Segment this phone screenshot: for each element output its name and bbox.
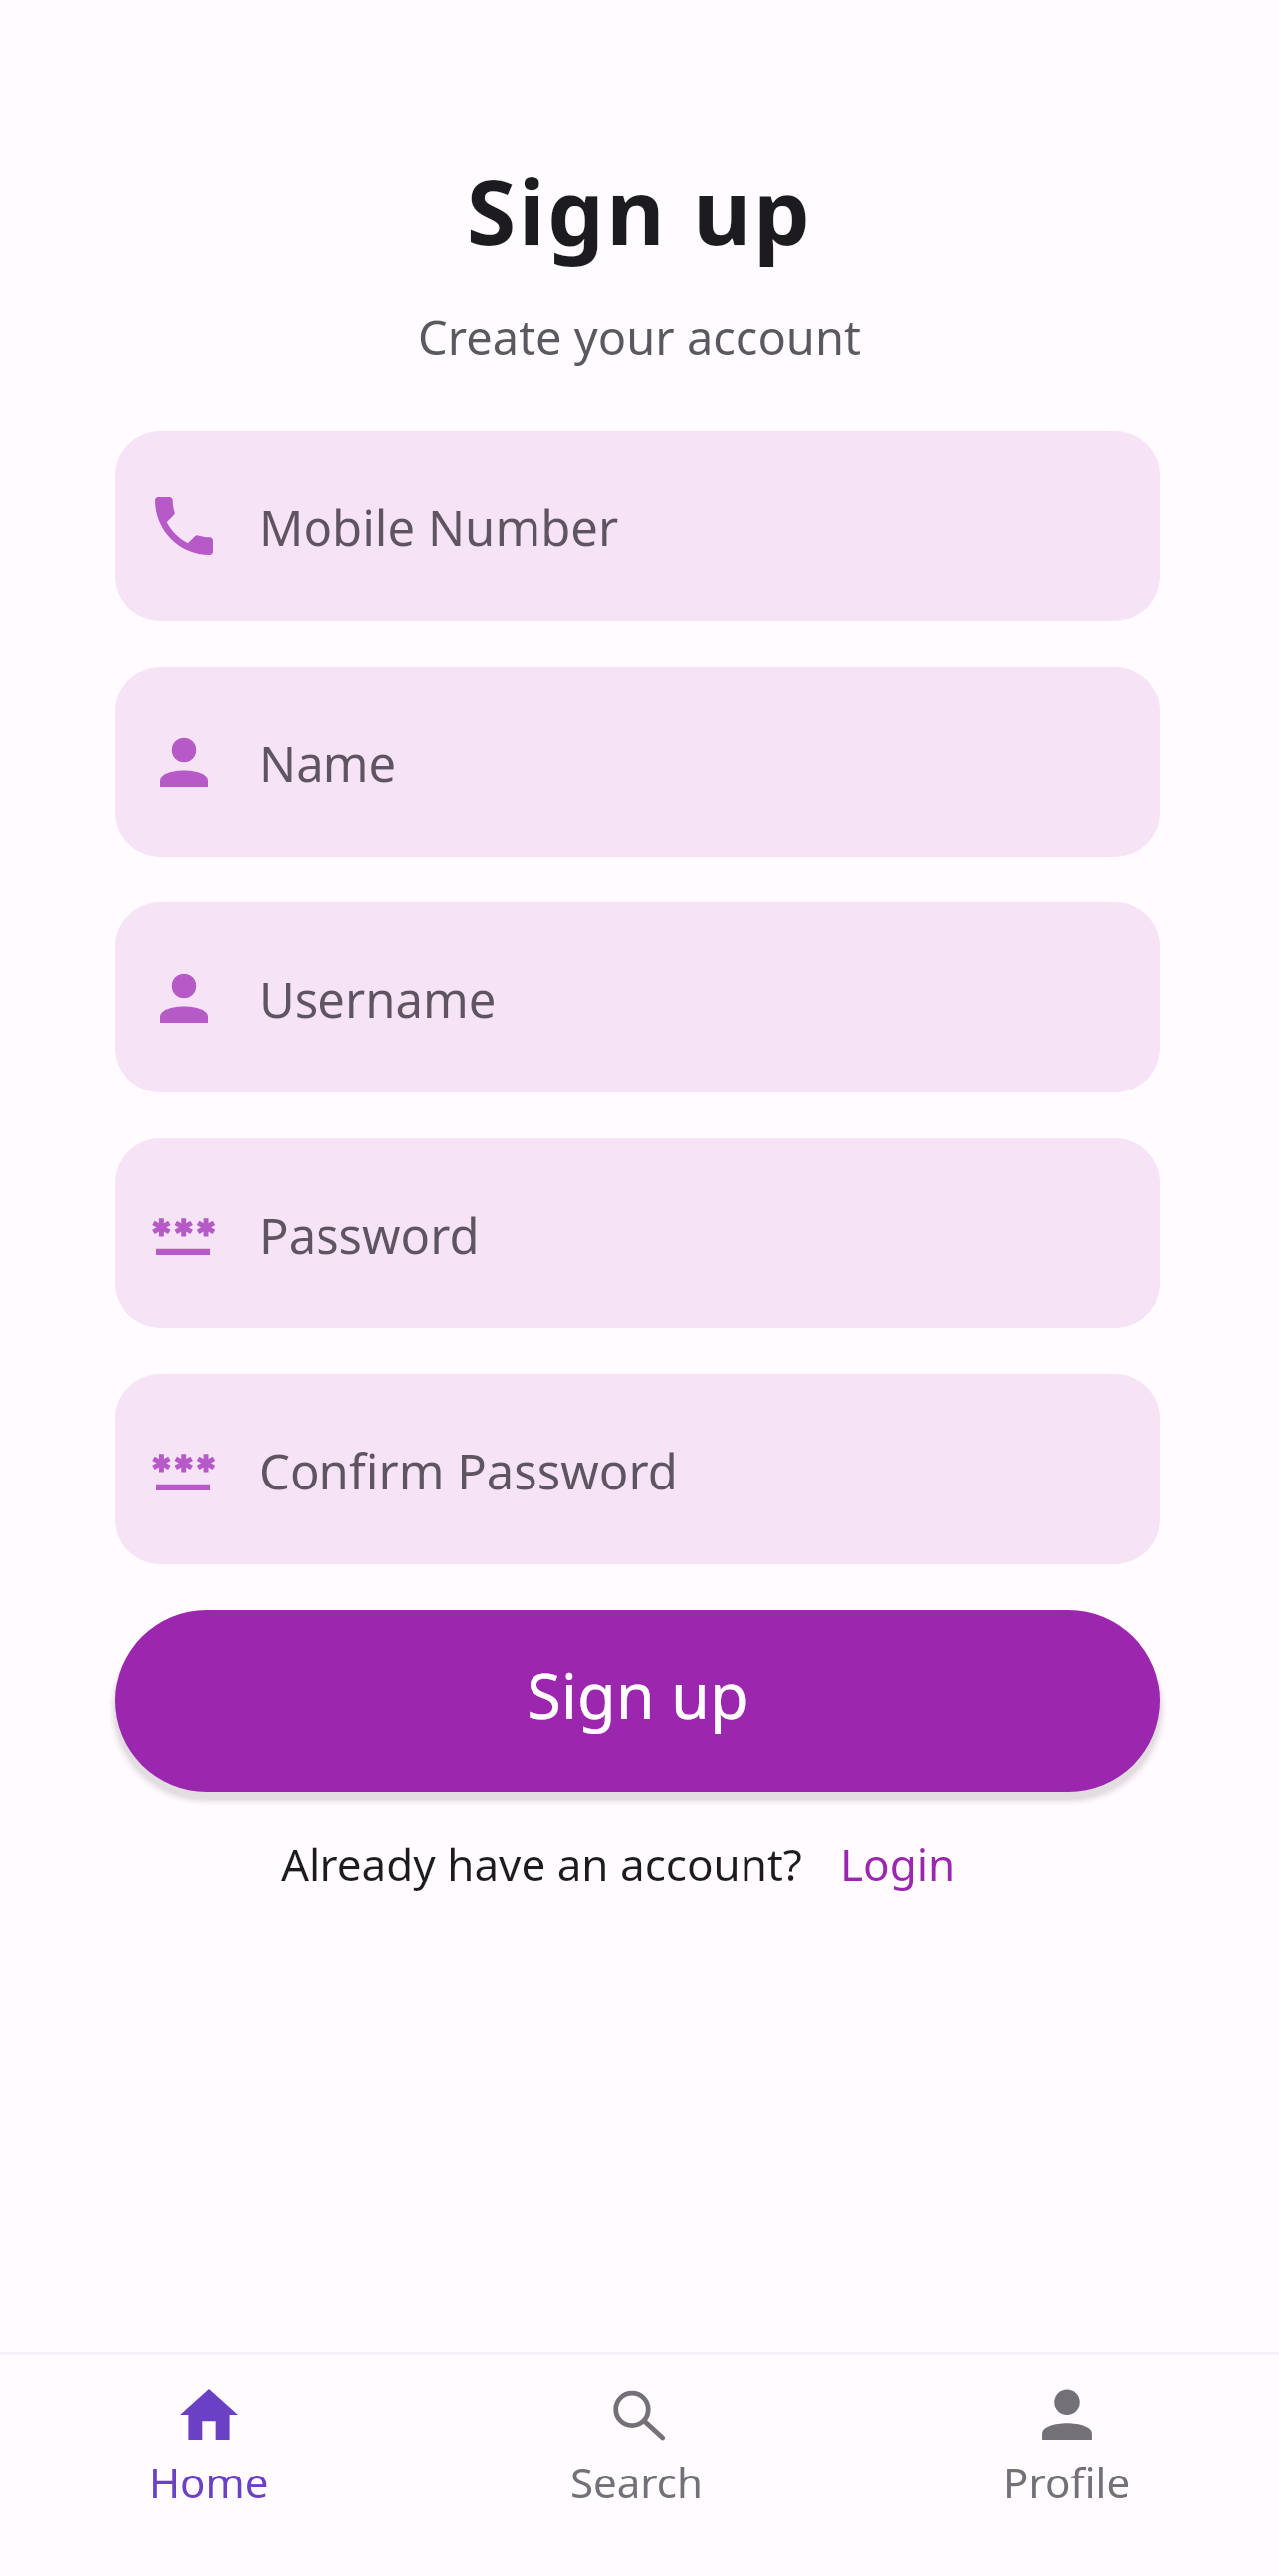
staticText: Sign up (0, 149, 1279, 272)
button[interactable]: Home (0, 2355, 418, 2576)
staticText: Sign up (527, 1653, 748, 1738)
button[interactable]: Profile (855, 2355, 1279, 2576)
button[interactable]: Login (840, 1834, 956, 1893)
staticText: Profile (1003, 2454, 1131, 2510)
button[interactable]: Sign up (115, 1610, 1160, 1792)
button[interactable]: Search (418, 2355, 855, 2576)
staticText: Mobile Number (259, 495, 619, 561)
staticText: Already have an account? (281, 1834, 802, 1893)
button[interactable]: Password (115, 1138, 1160, 1328)
button[interactable]: Mobile Number (115, 431, 1160, 621)
staticText: Search (570, 2454, 703, 2510)
button[interactable]: Name (115, 667, 1160, 857)
staticText: Confirm Password (259, 1438, 678, 1504)
staticText: Name (259, 730, 397, 797)
button[interactable]: Confirm Password (115, 1374, 1160, 1564)
button[interactable]: Username (115, 902, 1160, 1092)
other: Home (180, 2389, 238, 2440)
staticText: Home (149, 2454, 269, 2510)
staticText: Username (259, 966, 497, 1033)
staticText: Login (840, 1834, 956, 1893)
other: Search (609, 2389, 665, 2440)
other: Profile (1041, 2389, 1093, 2440)
staticText: Password (259, 1202, 480, 1269)
staticText: Create your account (0, 305, 1279, 369)
